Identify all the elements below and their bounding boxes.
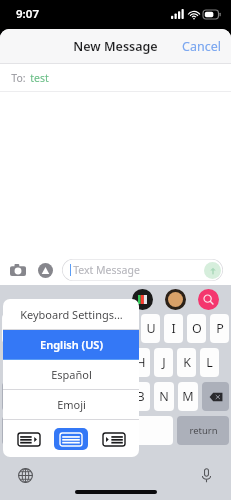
button[interactable]: Cancel bbox=[172, 32, 231, 61]
button[interactable]: S bbox=[36, 348, 56, 377]
staticText: New Message bbox=[73, 38, 158, 55]
staticText: O bbox=[192, 320, 202, 337]
button[interactable]: K bbox=[177, 348, 196, 377]
button[interactable]: R bbox=[72, 314, 91, 343]
staticText: A bbox=[18, 354, 26, 371]
staticText: English (US) bbox=[40, 337, 103, 352]
staticText: L bbox=[206, 354, 213, 371]
button[interactable]: Space bbox=[37, 416, 173, 445]
button[interactable]: Numbers bbox=[2, 416, 33, 445]
button[interactable]: To: bbox=[0, 64, 231, 91]
button[interactable]: D bbox=[60, 348, 80, 377]
staticText: M bbox=[182, 388, 194, 405]
staticText: G bbox=[113, 354, 123, 371]
staticText: test bbox=[30, 71, 49, 85]
staticText: V bbox=[112, 388, 120, 405]
button[interactable]: C bbox=[82, 382, 102, 411]
button[interactable]: O bbox=[187, 314, 206, 343]
button[interactable]: Emoji bbox=[3, 390, 139, 419]
button[interactable]: Español bbox=[3, 360, 139, 389]
button[interactable]: N bbox=[154, 382, 174, 411]
staticText: P bbox=[216, 320, 224, 337]
button[interactable]: App bbox=[165, 289, 186, 310]
button[interactable]: App Store bbox=[35, 260, 55, 280]
staticText: return bbox=[189, 424, 218, 437]
button[interactable]: App bbox=[132, 289, 153, 310]
button[interactable]: W bbox=[26, 314, 45, 343]
staticText: Q bbox=[7, 320, 17, 337]
staticText: To: bbox=[11, 71, 26, 85]
button[interactable]: Text Message bbox=[62, 259, 223, 281]
button[interactable]: Left-hand keyboard layout bbox=[12, 428, 46, 450]
button[interactable]: Shift bbox=[2, 382, 29, 411]
button[interactable]: T bbox=[95, 314, 114, 343]
button[interactable]: L bbox=[200, 348, 219, 377]
button[interactable]: V bbox=[106, 382, 126, 411]
staticText: N bbox=[159, 388, 169, 405]
button[interactable]: A bbox=[12, 348, 32, 377]
staticText: Cancel bbox=[182, 38, 221, 55]
staticText: U bbox=[146, 320, 156, 337]
button[interactable]: Switch language bbox=[14, 464, 36, 486]
staticText: T bbox=[101, 320, 108, 337]
button[interactable]: Q bbox=[2, 314, 22, 343]
button[interactable]: E bbox=[49, 314, 68, 343]
staticText: H bbox=[136, 354, 146, 371]
staticText: E bbox=[55, 320, 62, 337]
button[interactable]: J bbox=[154, 348, 173, 377]
button[interactable]: F bbox=[84, 348, 104, 377]
staticText: S bbox=[43, 354, 50, 371]
button[interactable]: App bbox=[198, 289, 219, 310]
staticText: Text Message bbox=[73, 263, 140, 277]
button[interactable]: Send bbox=[204, 262, 221, 279]
staticText: K bbox=[183, 354, 191, 371]
staticText: Emoji bbox=[57, 397, 86, 412]
button[interactable]: B bbox=[130, 382, 150, 411]
button[interactable]: U bbox=[141, 314, 160, 343]
staticText: W bbox=[30, 320, 42, 337]
button[interactable]: Backspace bbox=[202, 382, 229, 411]
staticText: Z bbox=[40, 388, 48, 405]
button[interactable]: I bbox=[164, 314, 183, 343]
staticText: R bbox=[78, 320, 86, 337]
button[interactable]: H bbox=[131, 348, 150, 377]
button[interactable]: English (US) bbox=[3, 330, 139, 359]
button[interactable]: X bbox=[58, 382, 78, 411]
staticText: Keyboard Settings... bbox=[20, 307, 123, 322]
staticText: X bbox=[64, 388, 72, 405]
button[interactable]: Camera bbox=[8, 260, 28, 280]
button[interactable]: Full keyboard layout bbox=[54, 428, 88, 450]
staticText: J bbox=[162, 354, 166, 371]
button[interactable]: P bbox=[210, 314, 229, 343]
button[interactable]: Right-hand keyboard layout bbox=[97, 428, 131, 450]
button[interactable]: Y bbox=[118, 314, 137, 343]
button[interactable]: Dictation bbox=[195, 464, 217, 486]
staticText: B bbox=[136, 388, 145, 405]
button[interactable]: M bbox=[178, 382, 198, 411]
staticText: 123 bbox=[10, 425, 26, 437]
button[interactable]: Z bbox=[33, 382, 54, 411]
button[interactable]: Return bbox=[177, 416, 229, 445]
staticText: D bbox=[65, 354, 75, 371]
staticText: Español bbox=[51, 367, 92, 382]
staticText: F bbox=[91, 354, 98, 371]
staticText: 9:07 bbox=[16, 6, 39, 22]
staticText: Y bbox=[124, 320, 132, 337]
staticText: I bbox=[171, 320, 176, 337]
button[interactable]: Keyboard Settings... bbox=[3, 299, 139, 329]
staticText: C bbox=[88, 388, 96, 405]
button[interactable]: G bbox=[108, 348, 127, 377]
